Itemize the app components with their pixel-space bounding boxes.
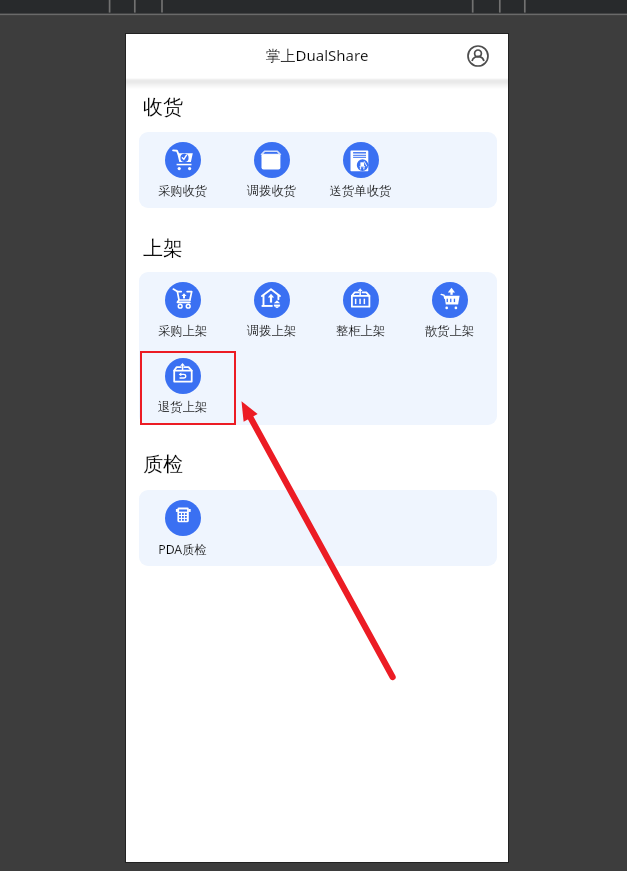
- button[interactable]: 退货上架: [138, 348, 227, 424]
- staticText: 采购收货: [138, 183, 227, 198]
- button[interactable]: 散货上架: [405, 272, 494, 348]
- staticText: 散货上架: [405, 323, 494, 338]
- staticText: 收货: [143, 95, 183, 120]
- button[interactable]: PDA质检: [138, 490, 227, 566]
- staticText: 退货上架: [138, 399, 227, 414]
- staticText: 送货单收货: [316, 183, 405, 198]
- button[interactable]: 调拨上架: [227, 272, 316, 348]
- staticText: 掌上DualShare: [126, 45, 508, 65]
- button[interactable]: Account: [465, 43, 491, 69]
- staticText: 质检: [143, 452, 183, 477]
- button[interactable]: 调拨收货: [227, 132, 316, 208]
- staticText: 采购上架: [138, 323, 227, 338]
- staticText: 整柜上架: [316, 323, 405, 338]
- staticText: 调拨上架: [227, 323, 316, 338]
- button[interactable]: 送货单收货: [316, 132, 405, 208]
- button[interactable]: 采购上架: [138, 272, 227, 348]
- staticText: 调拨收货: [227, 183, 316, 198]
- staticText: PDA质检: [138, 541, 227, 558]
- button[interactable]: 采购收货: [138, 132, 227, 208]
- staticText: 上架: [143, 236, 183, 261]
- button[interactable]: 整柜上架: [316, 272, 405, 348]
